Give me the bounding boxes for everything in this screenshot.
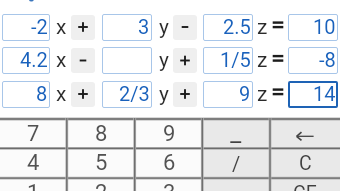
- button[interactable]: 1/5: [203, 47, 253, 74]
- staticText: x: [56, 15, 67, 40]
- button[interactable]: [71, 48, 95, 73]
- staticText: z: [257, 82, 268, 107]
- button[interactable]: [202, 119, 270, 148]
- staticText: -2: [31, 15, 48, 38]
- button[interactable]: [270, 178, 340, 191]
- staticText: CE: [293, 182, 317, 191]
- staticText: 2: [95, 180, 108, 191]
- button[interactable]: 9: [203, 81, 253, 108]
- button[interactable]: -8: [288, 47, 338, 74]
- button[interactable]: 2/3: [102, 81, 152, 108]
- staticText: 10: [313, 15, 336, 38]
- button[interactable]: [135, 178, 203, 191]
- button[interactable]: 8: [2, 81, 50, 108]
- staticText: x: [56, 48, 67, 73]
- button[interactable]: 2.5: [203, 14, 253, 41]
- button[interactable]: [173, 15, 197, 40]
- staticText: 7: [27, 121, 40, 147]
- staticText: /: [232, 152, 241, 175]
- button[interactable]: 3: [102, 14, 152, 41]
- button[interactable]: 4.2: [2, 47, 50, 74]
- button[interactable]: [270, 148, 340, 178]
- button[interactable]: [0, 148, 67, 178]
- button[interactable]: [0, 119, 67, 148]
- staticText: 3: [138, 15, 150, 38]
- staticText: y: [159, 82, 169, 107]
- staticText: 6: [163, 150, 176, 176]
- staticText: 8: [36, 82, 48, 105]
- button[interactable]: [135, 119, 203, 148]
- staticText: 14: [313, 82, 336, 105]
- staticText: C: [299, 152, 312, 175]
- staticText: 3: [163, 180, 176, 191]
- button[interactable]: [0, 178, 67, 191]
- staticText: 1/5: [220, 48, 251, 71]
- button[interactable]: -2: [2, 14, 50, 41]
- button[interactable]: 14: [288, 81, 338, 108]
- staticText: 2/3: [119, 82, 150, 105]
- button[interactable]: [270, 119, 340, 148]
- staticText: z: [257, 15, 268, 40]
- staticText: 9: [163, 121, 176, 147]
- button[interactable]: 10: [288, 14, 338, 41]
- button[interactable]: [67, 119, 135, 148]
- button[interactable]: [173, 82, 197, 107]
- button[interactable]: [202, 148, 270, 178]
- button[interactable]: [71, 82, 95, 107]
- button[interactable]: [202, 178, 270, 191]
- staticText: y: [159, 48, 169, 73]
- button[interactable]: [173, 48, 197, 73]
- button[interactable]: [71, 15, 95, 40]
- button[interactable]: [102, 47, 152, 74]
- staticText: 4.2: [20, 48, 48, 71]
- button[interactable]: [67, 178, 135, 191]
- staticText: 4: [27, 150, 40, 176]
- staticText: y: [159, 15, 169, 40]
- staticText: x: [56, 82, 67, 107]
- staticText: 1: [27, 180, 40, 191]
- staticText: 9: [239, 82, 251, 105]
- button[interactable]: [67, 148, 135, 178]
- staticText: 5: [95, 150, 108, 176]
- staticText: 8: [95, 121, 108, 147]
- staticText: 2.5: [223, 15, 251, 38]
- button[interactable]: [135, 148, 203, 178]
- staticText: -8: [319, 48, 336, 71]
- staticText: z: [257, 48, 268, 73]
